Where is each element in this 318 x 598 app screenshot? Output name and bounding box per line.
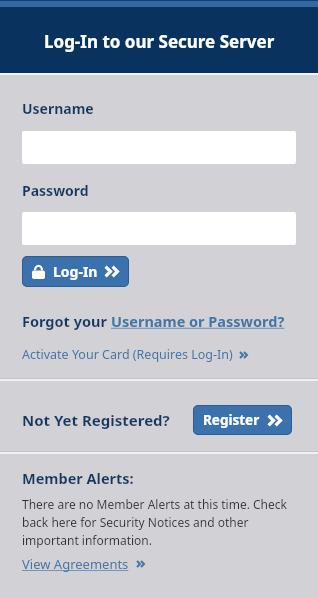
staticText: Activate Your Card (Requires Log-In) <box>22 346 233 363</box>
staticText: Password <box>22 181 89 200</box>
staticText: Not Yet Registered? <box>22 410 170 430</box>
staticText: Log-In <box>53 262 98 281</box>
button[interactable]: Log-In <box>22 256 129 287</box>
staticText: There are no Member Alerts at this time.… <box>22 496 287 549</box>
button[interactable]: View Agreements <box>22 555 145 573</box>
staticText: Register <box>203 411 260 429</box>
staticText: Member Alerts: <box>22 468 134 488</box>
button[interactable]: Register <box>193 405 292 435</box>
button[interactable]: Activate Your Card (Requires Log-In) <box>22 346 248 363</box>
staticText: View Agreements <box>22 555 129 573</box>
staticText: Log-In to our Secure Server <box>44 30 275 53</box>
button[interactable]: Username or Password? <box>111 311 285 331</box>
staticText: Forgot your <box>22 311 111 331</box>
staticText: Username <box>22 99 94 118</box>
